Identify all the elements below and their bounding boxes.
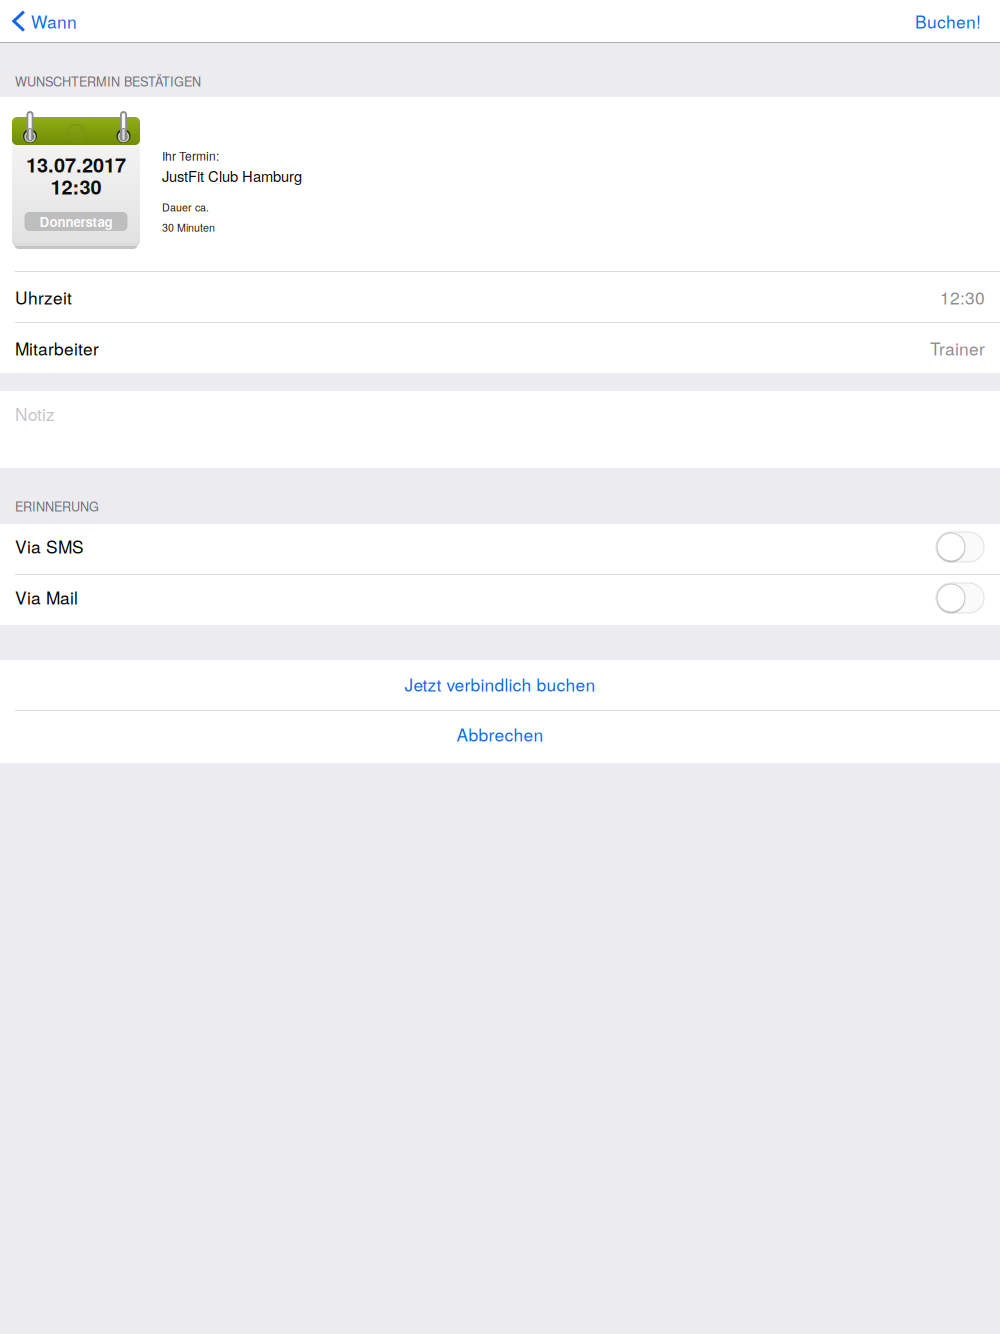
button[interactable]: Wann <box>0 0 87 42</box>
staticText: 30 Minuten <box>162 219 215 235</box>
button[interactable]: Via Mail <box>0 575 1000 625</box>
staticText: Buchen! <box>915 9 981 33</box>
staticText: Uhrzeit <box>15 285 72 309</box>
staticText: Donnerstag <box>39 212 112 231</box>
staticText: Notiz <box>15 401 55 426</box>
button[interactable]: Uhrzeit <box>0 272 1000 322</box>
button[interactable]: Abbrechen <box>0 711 1000 763</box>
staticText: Trainer <box>930 336 985 360</box>
staticText: Jetzt verbindlich buchen <box>404 672 595 696</box>
button[interactable]: Buchen! <box>901 0 1000 42</box>
staticText: Ihr Termin: <box>162 147 219 164</box>
staticText: Via Mail <box>15 585 78 609</box>
staticText: JustFit Club Hamburg <box>162 165 302 186</box>
staticText: ERINNERUNG <box>15 497 99 515</box>
staticText: Mitarbeiter <box>15 336 99 360</box>
button[interactable]: Mitarbeiter <box>0 323 1000 373</box>
staticText: 12:30 <box>50 172 101 201</box>
staticText: Abbrechen <box>456 722 543 746</box>
staticText: Dauer ca. <box>162 199 209 214</box>
staticText: WUNSCHTERMIN BESTÄTIGEN <box>15 72 201 90</box>
staticText: 12:30 <box>940 285 985 309</box>
staticText: Wann <box>31 9 77 33</box>
button[interactable]: Via SMS <box>0 524 1000 574</box>
button[interactable]: Jetzt verbindlich buchen <box>0 660 1000 710</box>
staticText: Via SMS <box>15 534 84 558</box>
staticText: 13.07.2017 <box>26 150 126 179</box>
